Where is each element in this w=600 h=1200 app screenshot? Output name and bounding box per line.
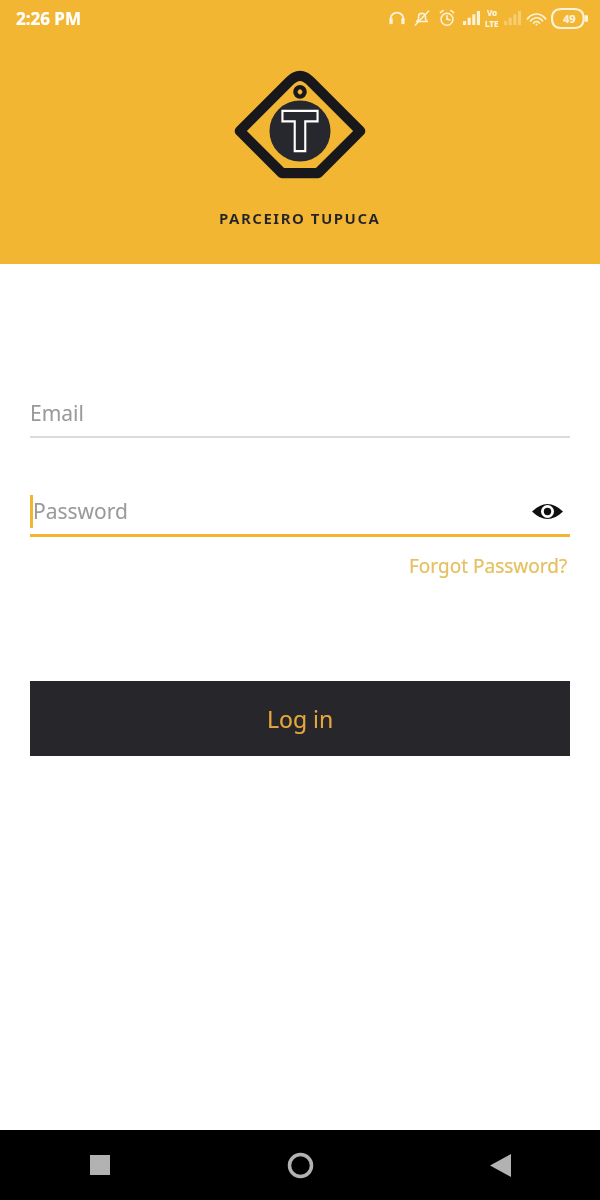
staticText: Vo	[487, 7, 498, 18]
button[interactable]: Back	[400, 1130, 600, 1200]
button[interactable]: Recents	[0, 1130, 200, 1200]
staticText: Password	[33, 497, 128, 526]
button[interactable]: Home	[200, 1130, 400, 1200]
button[interactable]: Log in	[30, 681, 570, 756]
staticText: Email	[30, 399, 84, 428]
button[interactable]: Forgot Password?	[407, 549, 570, 583]
button[interactable]: Show password	[524, 488, 570, 534]
staticText: Forgot Password?	[409, 553, 568, 579]
staticText: PARCEIRO TUPUCA	[219, 208, 381, 228]
button[interactable]: Email	[30, 390, 570, 438]
button[interactable]: Password	[30, 488, 570, 534]
staticText: Log in	[267, 703, 334, 734]
staticText: 2:26 PM	[16, 7, 81, 30]
staticText: 49	[563, 11, 576, 26]
staticText: LTE	[485, 18, 499, 29]
